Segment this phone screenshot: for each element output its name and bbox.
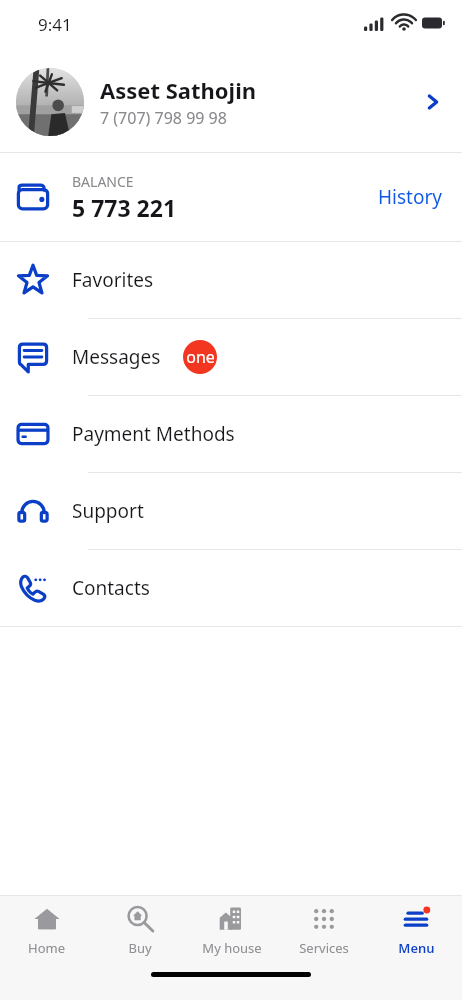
other: Open profile	[420, 89, 446, 115]
button[interactable]: Buy	[93, 896, 186, 964]
button[interactable]: Support	[0, 473, 462, 549]
staticText: 5 773 221	[72, 192, 177, 223]
staticText: Contacts	[72, 575, 150, 601]
staticText: Payment Methods	[72, 421, 235, 447]
button[interactable]: History	[374, 178, 446, 216]
button[interactable]: Contacts	[0, 550, 462, 626]
staticText: Messages	[72, 344, 161, 370]
staticText: Favorites	[72, 267, 154, 293]
staticText: Services	[299, 939, 349, 957]
staticText: My house	[202, 939, 262, 957]
staticText: 9:41	[38, 13, 72, 36]
button[interactable]: Menu	[370, 896, 462, 964]
button[interactable]: Home	[0, 896, 93, 964]
staticText: 7 (707) 798 99 98	[100, 107, 227, 129]
staticText: Support	[72, 498, 144, 524]
button[interactable]: BALANCE	[0, 153, 462, 241]
staticText: Menu	[398, 939, 435, 957]
button[interactable]: Asset Sathojin	[0, 52, 462, 152]
staticText: Buy	[128, 939, 152, 957]
staticText: Asset Sathojin	[100, 75, 257, 105]
button[interactable]: Messages	[0, 319, 462, 395]
button[interactable]: Favorites	[0, 242, 462, 318]
button[interactable]: Services	[278, 896, 370, 964]
staticText: History	[378, 184, 442, 210]
button[interactable]: My house	[186, 896, 278, 964]
button[interactable]: Payment Methods	[0, 396, 462, 472]
staticText: one	[186, 346, 215, 368]
staticText: Home	[28, 939, 65, 957]
staticText: BALANCE	[72, 172, 134, 191]
